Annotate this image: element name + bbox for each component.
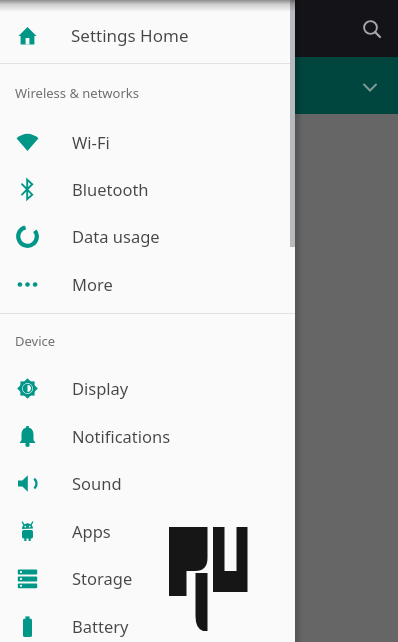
staticText: Notifications xyxy=(72,425,171,447)
button[interactable]: Apps xyxy=(0,507,295,555)
staticText: Device xyxy=(15,332,56,350)
button[interactable]: Battery xyxy=(0,602,295,642)
button[interactable]: More xyxy=(0,260,295,308)
button[interactable]: Storage xyxy=(0,554,295,602)
button[interactable]: Notifications xyxy=(0,412,295,460)
button[interactable]: Display xyxy=(0,364,295,412)
staticText: Data usage xyxy=(72,225,160,247)
button[interactable]: Sound xyxy=(0,459,295,507)
staticText: Battery xyxy=(72,615,129,637)
button[interactable]: Data usage xyxy=(0,212,295,260)
button[interactable] xyxy=(295,57,398,114)
button[interactable]: Wi-Fi xyxy=(0,118,295,166)
staticText: Wireless & networks xyxy=(15,84,139,102)
staticText: Display xyxy=(72,377,129,399)
staticText: Sound xyxy=(72,472,122,494)
staticText: Storage xyxy=(72,567,133,589)
staticText: More xyxy=(72,273,113,295)
staticText: Bluetooth xyxy=(72,178,149,200)
button[interactable]: Bluetooth xyxy=(0,165,295,213)
staticText: Apps xyxy=(72,520,111,542)
button[interactable] xyxy=(295,0,398,57)
button[interactable]: Settings Home xyxy=(0,11,295,60)
staticText: Wi-Fi xyxy=(72,131,110,153)
staticText: Settings Home xyxy=(71,24,189,47)
